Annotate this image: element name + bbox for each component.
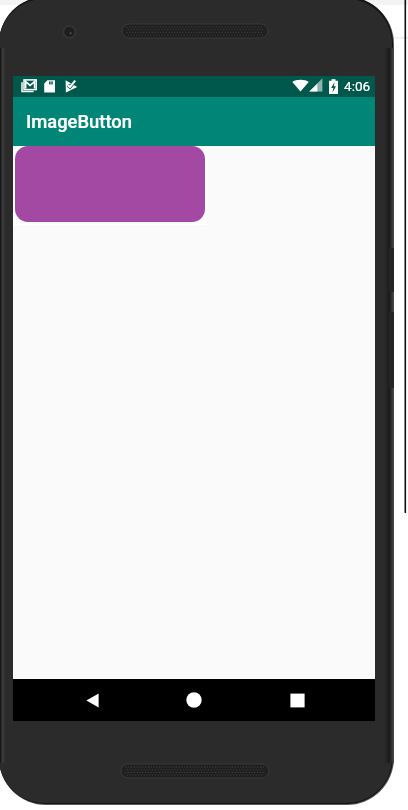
button[interactable]: Recent apps bbox=[256, 679, 338, 721]
button[interactable]: Back bbox=[51, 679, 133, 721]
button[interactable]: Image button bbox=[13, 146, 207, 225]
staticText: 4:06 bbox=[344, 78, 371, 94]
button[interactable]: Home bbox=[153, 679, 235, 721]
staticText: ImageButton bbox=[26, 111, 132, 133]
